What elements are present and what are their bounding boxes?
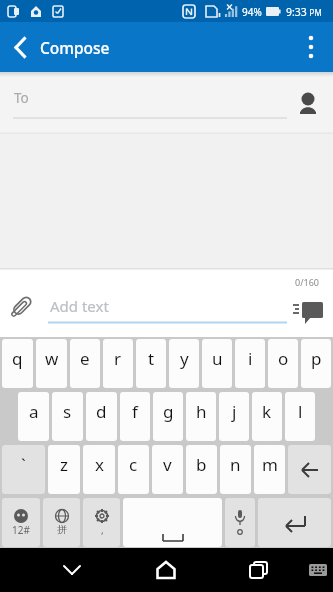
staticText: 12# [12,523,30,537]
staticText: x [95,453,104,476]
staticText: l [298,400,303,423]
staticText: o [278,347,289,370]
button[interactable]: m [254,445,285,494]
button[interactable]: g [153,392,183,441]
staticText: Add text [50,296,109,316]
button[interactable]: a [18,392,49,441]
staticText: 9:33 PM [286,5,322,19]
button[interactable]: i [235,339,265,388]
button[interactable]: l [285,392,315,441]
button[interactable] [293,22,333,72]
staticText: 0/160 [295,276,319,288]
staticText: h [196,400,207,423]
staticText: m [262,453,278,476]
button[interactable]: p [301,339,331,388]
staticText: e [80,347,90,370]
button[interactable] [48,548,96,592]
staticText: 拼 [57,523,67,536]
staticText: n [230,453,241,476]
button[interactable]: h [186,392,216,441]
staticText: a [29,400,39,423]
button[interactable]: k [252,392,282,441]
staticText: r [114,347,122,370]
staticText: v [163,453,172,476]
button[interactable]: f [120,392,150,441]
button[interactable]: u [202,339,232,388]
button[interactable]: Compose [0,22,110,72]
staticText: i [248,347,253,370]
staticText: j [232,400,237,423]
button[interactable]: e [70,339,100,388]
staticText: w [45,347,59,370]
button[interactable]: c [118,445,149,494]
staticText: k [262,400,272,423]
button[interactable]: q [2,339,33,388]
button[interactable]: o [268,339,298,388]
button[interactable] [2,290,38,326]
staticText: y [180,347,189,370]
button[interactable] [234,548,282,592]
button[interactable]: w [36,339,67,388]
button[interactable] [258,498,331,547]
staticText: c [129,453,138,476]
button[interactable] [288,445,331,494]
button[interactable] [225,498,255,547]
staticText: q [12,347,23,370]
button[interactable]: ` [2,445,45,494]
staticText: z [60,453,68,476]
staticText: t [148,347,155,370]
staticText: p [311,347,322,370]
button[interactable]: 拼 [43,498,80,547]
staticText: b [196,453,207,476]
button[interactable] [123,498,222,547]
button[interactable]: t [136,339,166,388]
staticText: u [212,347,223,370]
button[interactable]: z [48,445,80,494]
button[interactable]: j [219,392,249,441]
staticText: 94% [242,5,262,19]
button[interactable]: y [169,339,199,388]
button[interactable] [142,548,190,592]
staticText: d [96,400,107,423]
button[interactable] [288,86,328,124]
button[interactable]: r [103,339,133,388]
button[interactable]: n [220,445,251,494]
button[interactable]: d [86,392,117,441]
staticText: Compose [40,37,110,58]
staticText: , [101,523,104,537]
button[interactable]: x [83,445,115,494]
staticText: g [163,400,174,423]
staticText: f [132,400,138,423]
button[interactable] [290,294,328,328]
button[interactable]: b [186,445,217,494]
button[interactable]: 12# [2,498,40,547]
staticText: s [63,400,72,423]
staticText: To [14,89,29,107]
staticText: ` [21,453,26,476]
button[interactable]: , [83,498,120,547]
button[interactable]: s [52,392,83,441]
button[interactable]: v [152,445,183,494]
